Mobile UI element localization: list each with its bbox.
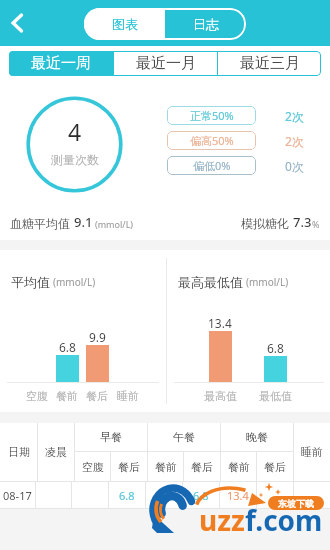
staticText: 日期 <box>8 445 30 459</box>
staticText: 6.8 <box>59 339 76 355</box>
staticText: (mmol/L) <box>246 275 289 289</box>
staticText: 9.9 <box>89 329 106 345</box>
staticText: 餐后 <box>191 460 213 474</box>
staticText: 晚餐 <box>246 430 268 444</box>
staticText: 最高值 <box>204 389 237 403</box>
button[interactable]: 图表 <box>84 8 165 40</box>
staticText: 6.8 <box>267 340 284 356</box>
staticText: 东坡下载 <box>278 498 314 509</box>
staticText: 正常50% <box>190 108 234 123</box>
staticText: 7.3 <box>293 213 312 231</box>
staticText: 午餐 <box>173 430 195 444</box>
staticText: 最高最低值 <box>178 274 243 290</box>
staticText: 空腹 <box>26 389 48 403</box>
staticText: 餐后 <box>118 460 140 474</box>
staticText: 凌晨 <box>45 445 67 459</box>
button[interactable]: 偏低0% <box>167 156 256 175</box>
staticText: 08-17 <box>3 488 32 503</box>
staticText: 0次 <box>285 158 304 174</box>
staticText: 最近三月 <box>240 54 300 73</box>
staticText: f.com <box>245 501 323 539</box>
staticText: 餐前 <box>155 460 177 474</box>
staticText: 2次 <box>285 133 304 149</box>
button[interactable]: 最近一月 <box>114 51 217 76</box>
staticText: 最近一周 <box>31 54 91 73</box>
staticText: 测量次数 <box>51 152 99 167</box>
staticText: 图表 <box>112 16 138 32</box>
staticText: 6.8 <box>193 488 209 503</box>
staticText: 空腹 <box>82 460 104 474</box>
staticText: 餐后 <box>86 389 108 403</box>
staticText: 9.5 <box>156 488 172 503</box>
staticText: 餐后 <box>264 460 286 474</box>
staticText: 血糖平均值 <box>10 216 70 231</box>
staticText: (mmol/L) <box>53 275 96 289</box>
staticText: 6.8 <box>119 488 135 503</box>
button[interactable]: 最近一周 <box>9 51 113 76</box>
button[interactable]: 偏高50% <box>167 131 256 150</box>
staticText: % <box>312 218 320 230</box>
staticText: 睡前 <box>301 445 323 459</box>
staticText: 餐前 <box>56 389 78 403</box>
staticText: 睡前 <box>117 389 139 403</box>
staticText: 偏高50% <box>190 133 234 148</box>
staticText: (mmol/L) <box>95 218 134 230</box>
staticText: uzz <box>199 501 245 539</box>
staticText: 偏低0% <box>193 158 231 173</box>
staticText: 早餐 <box>100 430 122 444</box>
staticText: 2次 <box>285 108 304 124</box>
staticText: 最低值 <box>259 389 292 403</box>
staticText: 13.4 <box>208 315 232 331</box>
button[interactable]: Back <box>1 6 35 40</box>
button[interactable]: 最近三月 <box>218 51 321 76</box>
staticText: 平均值 <box>11 274 50 290</box>
staticText: 模拟糖化 <box>241 216 289 231</box>
staticText: 4 <box>68 116 82 147</box>
staticText: 最近一月 <box>136 54 196 73</box>
staticText: 9.1 <box>74 213 93 231</box>
staticText: 日志 <box>193 16 219 32</box>
staticText: 13.4 <box>227 488 249 503</box>
staticText: 餐前 <box>228 460 250 474</box>
button[interactable]: 正常50% <box>167 106 256 125</box>
button[interactable]: 日志 <box>165 8 246 40</box>
